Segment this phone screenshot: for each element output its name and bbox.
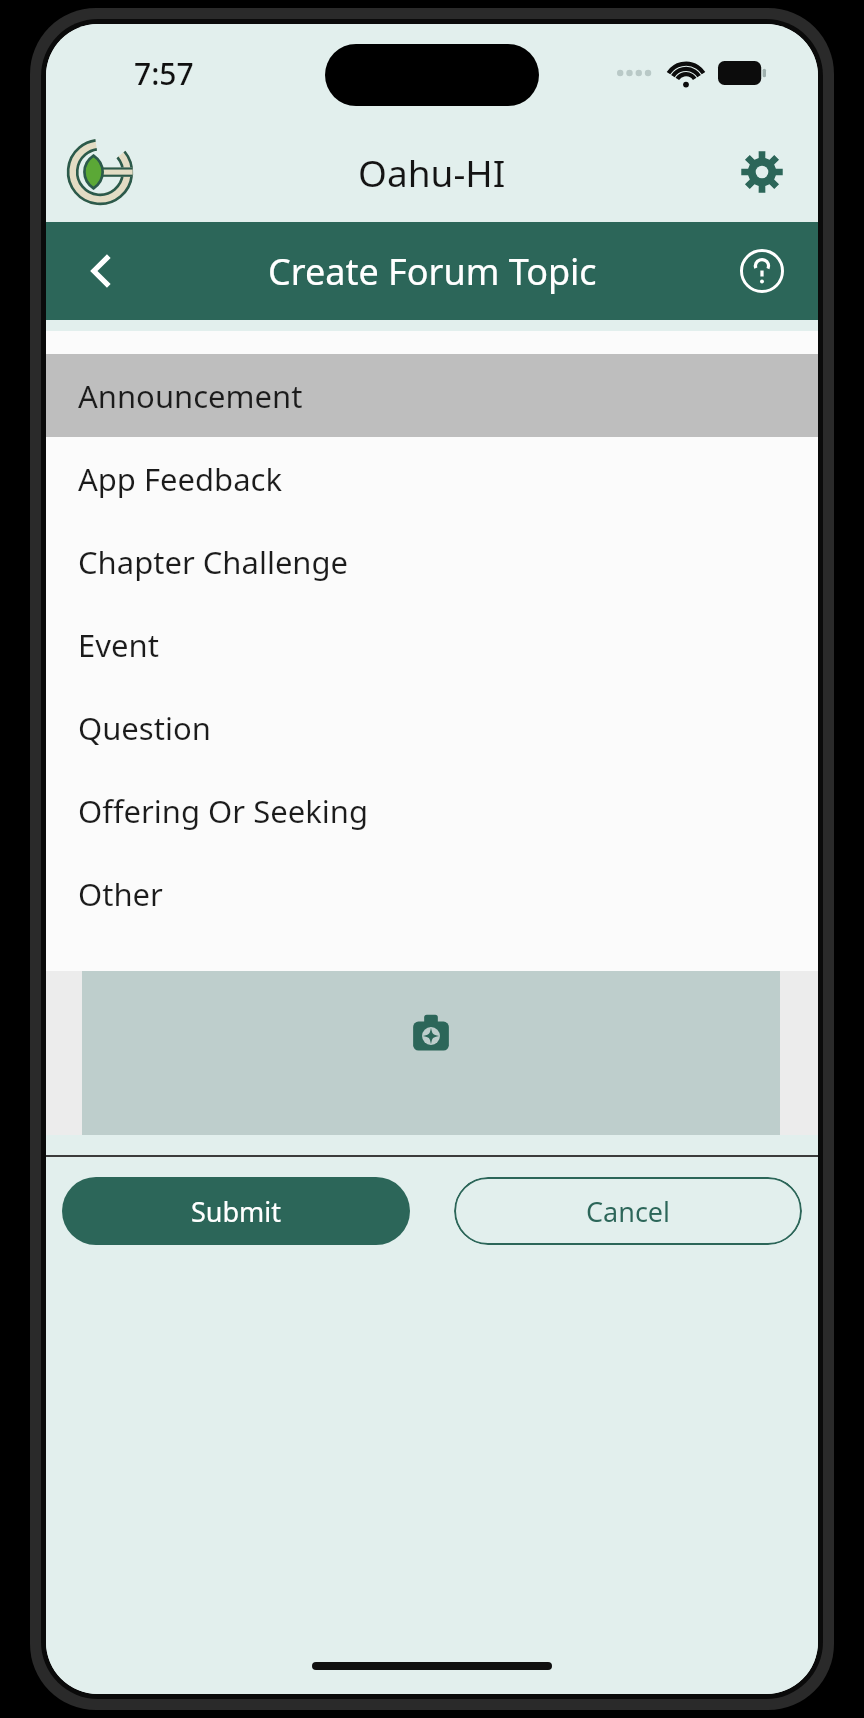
staticText: Announcement: [78, 375, 303, 417]
staticText: Create Forum Topic: [268, 247, 597, 296]
button[interactable]: Other: [46, 852, 818, 935]
staticText: Other: [78, 873, 163, 915]
staticText: Event: [78, 624, 159, 666]
button[interactable]: Settings: [726, 136, 798, 208]
button[interactable]: Home: [54, 126, 146, 218]
button[interactable]: Chapter Challenge: [46, 520, 818, 603]
button[interactable]: Offering Or Seeking: [46, 769, 818, 852]
staticText: Submit: [191, 1193, 282, 1230]
staticText: App Feedback: [78, 458, 283, 500]
button[interactable]: Cancel: [454, 1177, 802, 1245]
button[interactable]: Back: [64, 233, 140, 309]
button[interactable]: Event: [46, 603, 818, 686]
staticText: Cancel: [586, 1193, 671, 1230]
button[interactable]: App Feedback: [46, 437, 818, 520]
button[interactable]: Add photo: [82, 930, 780, 1135]
button[interactable]: Question: [46, 686, 818, 769]
button[interactable]: Announcement: [46, 354, 818, 437]
staticText: Chapter Challenge: [78, 541, 349, 583]
staticText: Question: [78, 707, 211, 749]
staticText: 7:57: [134, 53, 194, 94]
staticText: Oahu-HI: [358, 147, 506, 197]
button[interactable]: Submit: [62, 1177, 410, 1245]
button[interactable]: Help: [726, 235, 798, 307]
staticText: Offering Or Seeking: [78, 790, 368, 832]
